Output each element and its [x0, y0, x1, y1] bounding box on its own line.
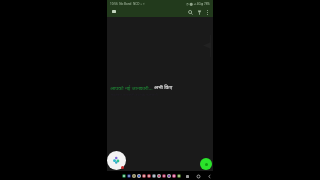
button[interactable]: Back: [206, 173, 212, 179]
staticText: 10:56 No Band NCD ⌁ ⚡: [110, 2, 145, 6]
button[interactable]: Pin: [195, 8, 204, 17]
button[interactable]: New chat: [200, 158, 212, 170]
button[interactable]: Scroll: [203, 42, 211, 49]
button[interactable]: App: [122, 174, 126, 178]
button[interactable]: App: [162, 174, 166, 178]
button[interactable]: Home: [195, 173, 201, 179]
button[interactable]: App: [142, 174, 146, 178]
button[interactable]: Assistant: [107, 151, 126, 170]
button[interactable]: App: [132, 174, 136, 178]
button[interactable]: Navigation menu: [110, 8, 119, 17]
staticText: ◔ ⬤ ⊿ 4G ▮ 78%: [186, 2, 210, 6]
button[interactable]: App: [127, 174, 131, 178]
staticText: अभी किए: [154, 84, 173, 91]
button[interactable]: App: [157, 174, 161, 178]
button[interactable]: App: [147, 174, 151, 178]
button[interactable]: Search: [186, 8, 195, 17]
button[interactable]: App: [177, 174, 181, 178]
button[interactable]: App: [152, 174, 156, 178]
button[interactable]: App: [167, 174, 171, 178]
button[interactable]: More options: [204, 9, 211, 16]
button[interactable]: App: [172, 174, 176, 178]
button[interactable]: Recents: [184, 173, 190, 179]
staticText: आपको नई जानकारी...: [110, 84, 153, 91]
button[interactable]: App: [137, 174, 141, 178]
